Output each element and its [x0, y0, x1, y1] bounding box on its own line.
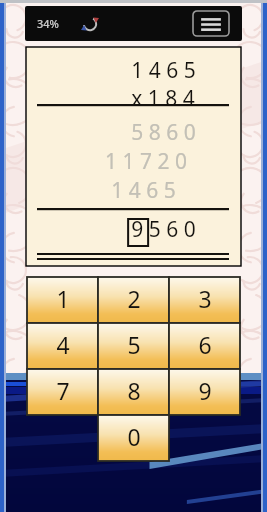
- button[interactable]: 3: [169, 277, 240, 323]
- staticText: 3: [198, 283, 212, 314]
- button[interactable]: 1: [27, 277, 98, 323]
- button[interactable]: Menu: [192, 10, 230, 37]
- staticText: 1 4 6 5: [131, 56, 196, 85]
- staticText: 1: [56, 283, 70, 314]
- button[interactable]: Refresh: [80, 14, 100, 34]
- staticText: 1 1 7 2 0: [105, 147, 187, 176]
- button[interactable]: 4: [27, 323, 98, 369]
- staticText: 34%: [37, 16, 59, 31]
- staticText: 9 5 6 0: [131, 215, 196, 244]
- button[interactable]: 9: [169, 369, 240, 415]
- button[interactable]: 6: [169, 323, 240, 369]
- staticText: 5 8 6 0: [131, 118, 196, 147]
- staticText: 0: [127, 421, 141, 452]
- staticText: 8: [127, 375, 141, 406]
- button[interactable]: 0: [98, 415, 169, 461]
- staticText: x 1 8 4: [131, 84, 195, 113]
- button[interactable]: 2: [98, 277, 169, 323]
- staticText: 6: [198, 329, 212, 360]
- staticText: 2: [127, 283, 141, 314]
- staticText: 7: [56, 375, 70, 406]
- staticText: 4: [56, 329, 70, 360]
- staticText: 1 4 6 5: [111, 176, 176, 205]
- button[interactable]: 7: [27, 369, 98, 415]
- staticText: 5: [127, 329, 141, 360]
- staticText: 9: [198, 375, 212, 406]
- button[interactable]: 8: [98, 369, 169, 415]
- button[interactable]: 5: [98, 323, 169, 369]
